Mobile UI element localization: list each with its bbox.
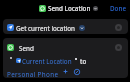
staticText: Send	[19, 44, 34, 51]
button[interactable]: Personal Phone	[7, 70, 59, 76]
staticText: Get current location	[16, 24, 75, 31]
staticText: Done	[110, 4, 127, 12]
staticText: to	[80, 57, 87, 63]
button[interactable]: Done	[110, 4, 127, 12]
button[interactable]: Send	[3, 38, 128, 78]
button[interactable]: More options	[115, 44, 122, 51]
staticText: Send Location	[48, 4, 91, 12]
button[interactable]: Get current location	[3, 19, 128, 34]
button[interactable]: Add	[63, 69, 68, 74]
button[interactable]	[16, 58, 21, 63]
staticText: Current Location	[22, 57, 72, 63]
button[interactable]: Send Location	[39, 4, 98, 12]
button[interactable]: More options	[115, 24, 122, 31]
staticText: Personal Phone	[7, 70, 59, 76]
button[interactable]: Insert variable	[74, 69, 80, 75]
